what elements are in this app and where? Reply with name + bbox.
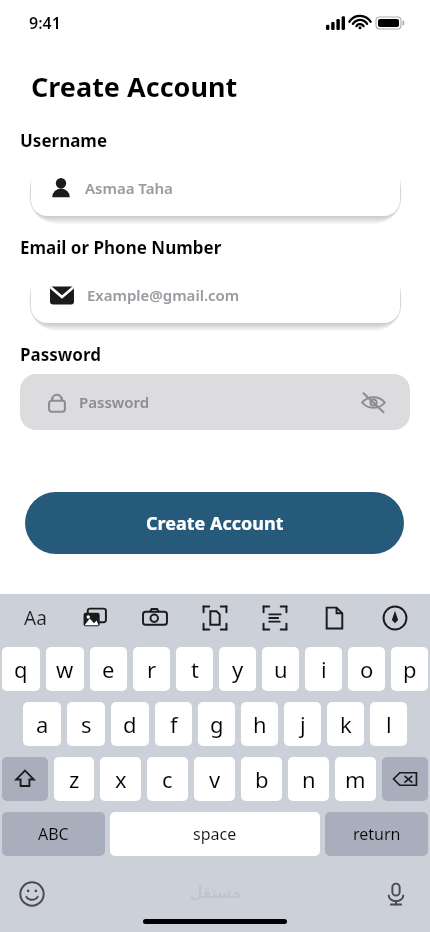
button[interactable]: Markup bbox=[378, 601, 412, 635]
staticText: Create Account bbox=[146, 511, 284, 536]
button[interactable]: r bbox=[133, 647, 170, 691]
button[interactable]: Text format bbox=[18, 601, 52, 635]
staticText: Username bbox=[20, 129, 108, 152]
button[interactable]: v bbox=[194, 757, 235, 801]
button[interactable]: f bbox=[155, 702, 192, 746]
staticText: j bbox=[300, 709, 306, 739]
staticText: u bbox=[274, 654, 288, 684]
staticText: e bbox=[102, 654, 115, 684]
button[interactable]: q bbox=[2, 647, 40, 691]
staticText: o bbox=[360, 654, 374, 684]
button[interactable]: m bbox=[335, 757, 376, 801]
button[interactable]: b bbox=[241, 757, 282, 801]
button[interactable]: i bbox=[305, 647, 342, 691]
staticText: v bbox=[209, 764, 221, 794]
staticText: Example@gmail.com bbox=[87, 285, 240, 305]
staticText: r bbox=[147, 654, 157, 684]
button[interactable]: e bbox=[90, 647, 127, 691]
button[interactable]: a bbox=[23, 702, 61, 746]
staticText: Password bbox=[79, 392, 150, 412]
staticText: k bbox=[340, 709, 352, 739]
staticText: i bbox=[321, 654, 327, 684]
staticText: g bbox=[210, 709, 224, 739]
staticText: y bbox=[232, 654, 244, 684]
button[interactable]: o bbox=[348, 647, 385, 691]
button[interactable]: x bbox=[100, 757, 141, 801]
button[interactable]: c bbox=[147, 757, 188, 801]
button[interactable]: Example@gmail.com bbox=[31, 267, 400, 323]
button[interactable]: Emoji bbox=[14, 876, 50, 912]
button[interactable]: l bbox=[370, 702, 407, 746]
staticText: Password bbox=[20, 343, 101, 366]
button[interactable]: y bbox=[219, 647, 256, 691]
button[interactable]: z bbox=[54, 757, 94, 801]
staticText: p bbox=[403, 654, 417, 684]
staticText: Email or Phone Number bbox=[20, 236, 222, 259]
button[interactable]: p bbox=[391, 647, 428, 691]
button[interactable]: Shift bbox=[2, 757, 48, 801]
button[interactable]: Create Account bbox=[25, 492, 404, 554]
staticText: b bbox=[255, 764, 269, 794]
staticText: Aa bbox=[24, 605, 47, 631]
staticText: x bbox=[115, 764, 127, 794]
staticText: s bbox=[81, 709, 92, 739]
button[interactable]: Backspace bbox=[382, 757, 428, 801]
button[interactable]: Scan text bbox=[258, 601, 292, 635]
staticText: return bbox=[353, 823, 401, 845]
button[interactable]: Photos bbox=[78, 601, 112, 635]
staticText: f bbox=[170, 709, 178, 739]
staticText: l bbox=[386, 709, 392, 739]
button[interactable]: Document bbox=[318, 601, 352, 635]
staticText: space bbox=[193, 823, 237, 845]
button[interactable]: d bbox=[111, 702, 149, 746]
button[interactable]: u bbox=[262, 647, 299, 691]
button[interactable]: Password bbox=[20, 374, 410, 430]
button[interactable]: Show password bbox=[356, 385, 390, 419]
button[interactable]: g bbox=[198, 702, 235, 746]
staticText: m bbox=[345, 764, 366, 794]
staticText: 9:41 bbox=[29, 12, 61, 34]
staticText: n bbox=[302, 764, 316, 794]
staticText: Create Account bbox=[31, 68, 238, 105]
staticText: h bbox=[253, 709, 267, 739]
button[interactable]: ABC bbox=[2, 812, 105, 856]
button[interactable]: Dictation bbox=[378, 876, 414, 912]
staticText: t bbox=[191, 654, 199, 684]
staticText: z bbox=[69, 764, 80, 794]
staticText: مستقل bbox=[190, 882, 241, 902]
button[interactable]: return bbox=[325, 812, 428, 856]
button[interactable]: k bbox=[327, 702, 364, 746]
button[interactable]: t bbox=[176, 647, 213, 691]
button[interactable]: Scan document bbox=[198, 601, 232, 635]
button[interactable]: w bbox=[46, 647, 84, 691]
staticText: Asmaa Taha bbox=[85, 178, 173, 198]
button[interactable]: h bbox=[241, 702, 278, 746]
staticText: q bbox=[14, 654, 28, 684]
button[interactable]: space bbox=[110, 812, 320, 856]
button[interactable]: s bbox=[67, 702, 105, 746]
staticText: ABC bbox=[38, 823, 69, 845]
button[interactable]: Camera bbox=[138, 601, 172, 635]
staticText: d bbox=[123, 709, 137, 739]
button[interactable]: n bbox=[288, 757, 329, 801]
staticText: c bbox=[162, 764, 173, 794]
staticText: w bbox=[56, 654, 74, 684]
button[interactable]: Asmaa Taha bbox=[31, 160, 400, 216]
button[interactable]: j bbox=[284, 702, 321, 746]
staticText: a bbox=[36, 709, 49, 739]
